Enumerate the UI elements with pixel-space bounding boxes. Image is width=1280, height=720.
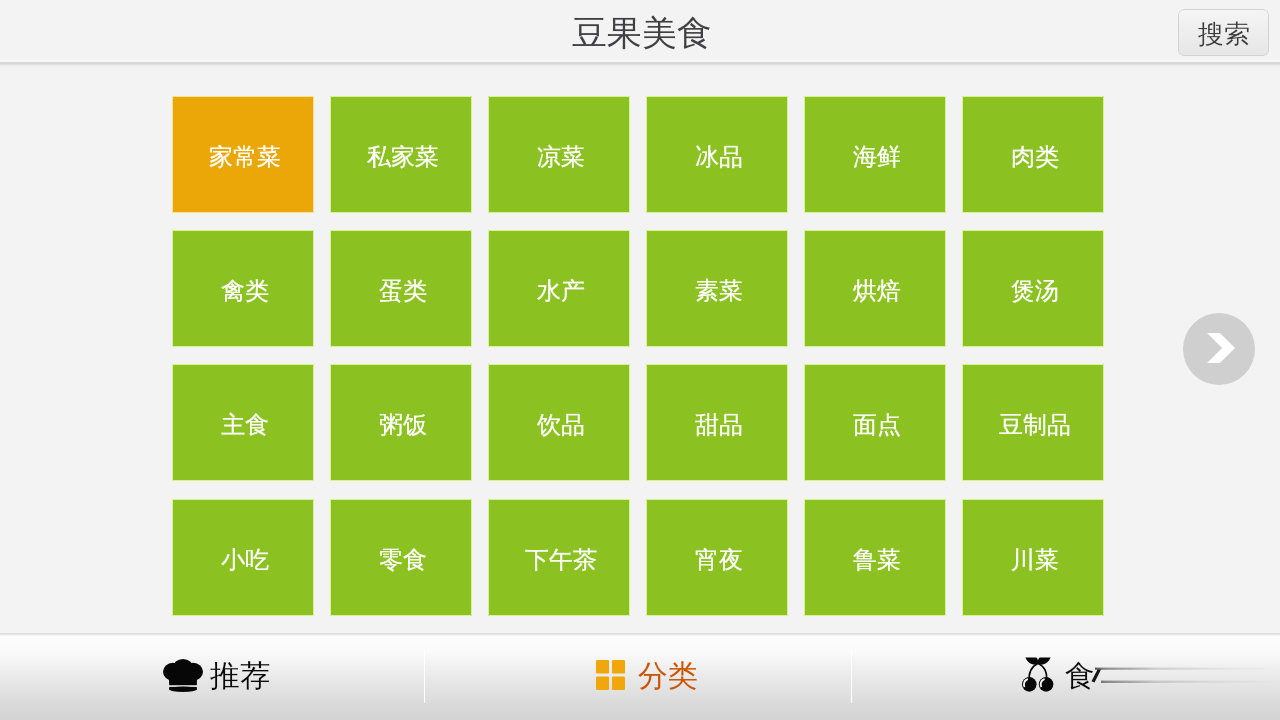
button[interactable]: 豆制品 — [963, 365, 1103, 480]
staticText: 下午茶 — [525, 545, 597, 575]
staticText: 小吃 — [221, 545, 269, 575]
button[interactable]: 饮品 — [489, 365, 629, 480]
button[interactable]: 搜索 — [1178, 9, 1269, 56]
button[interactable]: 冰品 — [647, 97, 787, 212]
button[interactable]: 川菜 — [963, 500, 1103, 615]
staticText: 凉菜 — [537, 142, 585, 172]
staticText: 面点 — [853, 410, 901, 440]
button[interactable]: 蛋类 — [331, 231, 471, 346]
staticText: 川菜 — [1011, 545, 1059, 575]
button[interactable]: 海鲜 — [805, 97, 945, 212]
staticText: 粥饭 — [379, 410, 427, 440]
button[interactable]: 禽类 — [173, 231, 313, 346]
staticText: 海鲜 — [853, 142, 901, 172]
staticText: 推荐 — [210, 657, 270, 695]
staticText: 饮品 — [537, 410, 585, 440]
staticText: 宵夜 — [695, 545, 743, 575]
staticText: 分类 — [638, 657, 698, 695]
staticText: 素菜 — [695, 276, 743, 306]
button[interactable]: 下午茶 — [489, 500, 629, 615]
button[interactable]: 主食 — [173, 365, 313, 480]
button[interactable]: 凉菜 — [489, 97, 629, 212]
button[interactable]: 私家菜 — [331, 97, 471, 212]
button[interactable]: 宵夜 — [647, 500, 787, 615]
staticText: 鲁菜 — [853, 545, 901, 575]
staticText: 蛋类 — [379, 276, 427, 306]
staticText: 主食 — [221, 410, 269, 440]
button[interactable]: 煲汤 — [963, 231, 1103, 346]
button[interactable]: 零食 — [331, 500, 471, 615]
button[interactable]: 鲁菜 — [805, 500, 945, 615]
button[interactable]: 甜品 — [647, 365, 787, 480]
button[interactable]: 烘焙 — [805, 231, 945, 346]
staticText: 食 — [1065, 657, 1095, 695]
button[interactable]: 食 — [852, 636, 1280, 720]
staticText: 煲汤 — [1011, 276, 1059, 306]
button[interactable]: 分类 — [425, 636, 851, 720]
button[interactable]: 推荐 — [0, 636, 424, 720]
button[interactable]: 肉类 — [963, 97, 1103, 212]
staticText: 水产 — [537, 276, 585, 306]
staticText: 家常菜 — [209, 142, 281, 172]
button[interactable]: 水产 — [489, 231, 629, 346]
button[interactable]: Next page — [1183, 313, 1255, 385]
staticText: 零食 — [379, 545, 427, 575]
button[interactable]: 面点 — [805, 365, 945, 480]
staticText: 私家菜 — [367, 142, 439, 172]
staticText: 肉类 — [1011, 142, 1059, 172]
button[interactable]: 素菜 — [647, 231, 787, 346]
staticText: 豆果美食 — [572, 11, 712, 55]
staticText: 甜品 — [695, 410, 743, 440]
button[interactable]: 家常菜 — [173, 97, 313, 212]
staticText: 冰品 — [695, 142, 743, 172]
button[interactable]: 粥饭 — [331, 365, 471, 480]
staticText: 豆制品 — [999, 410, 1071, 440]
staticText: 烘焙 — [853, 276, 901, 306]
staticText: 搜索 — [1198, 18, 1250, 51]
button[interactable]: 小吃 — [173, 500, 313, 615]
staticText: 禽类 — [221, 276, 269, 306]
